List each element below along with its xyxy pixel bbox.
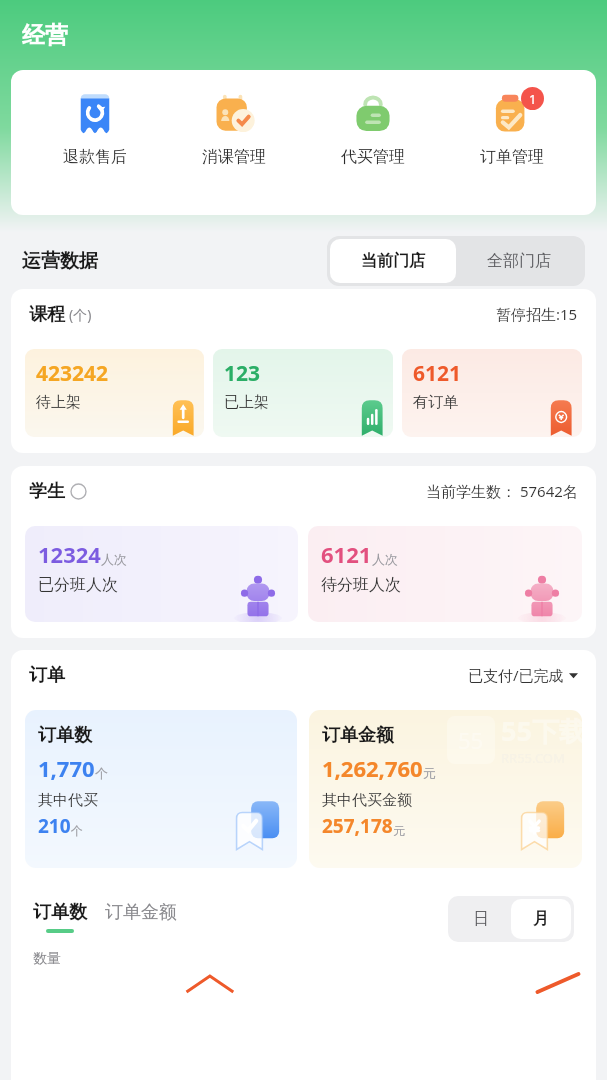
button[interactable]: 123 <box>213 349 393 437</box>
staticText: 订单金额 <box>105 901 177 924</box>
staticText: 消课管理 <box>202 147 266 167</box>
other: 代买管理 <box>350 92 396 138</box>
staticText: 全部门店 <box>487 251 551 271</box>
staticText: 经营 <box>22 21 68 50</box>
button[interactable]: 订单金额 <box>105 901 177 933</box>
staticText: 个 <box>95 765 108 781</box>
button[interactable]: 日 <box>451 899 511 939</box>
button[interactable]: 订单数 <box>25 710 297 868</box>
staticText: 1 <box>529 90 537 108</box>
staticText: 运营数据 <box>22 249 98 273</box>
staticText: 当前学生数： 57642名 <box>426 481 578 501</box>
button[interactable]: 月 <box>511 899 571 939</box>
staticText: 代买管理 <box>341 147 405 167</box>
other: 订单管理 <box>489 92 535 138</box>
staticText: 学生 <box>29 480 65 503</box>
staticText: 257,178 <box>322 813 393 839</box>
staticText: 月 <box>533 909 549 929</box>
button[interactable]: 退款售后 <box>40 92 150 167</box>
staticText: 423242 <box>36 359 109 388</box>
button[interactable]: 订单管理 <box>457 92 567 167</box>
staticText: 个 <box>71 823 83 838</box>
button[interactable]: 全部门店 <box>456 239 582 283</box>
staticText: 其中代买金额 <box>322 791 412 810</box>
staticText: 订单管理 <box>480 147 544 167</box>
staticText: 当前门店 <box>361 251 425 271</box>
staticText: 待上架 <box>36 393 81 412</box>
staticText: 人次 <box>372 551 398 567</box>
staticText: 退款售后 <box>63 147 127 167</box>
staticText: 日 <box>473 909 489 929</box>
button[interactable]: 已支付/已完成 <box>468 665 578 685</box>
other: 退款售后 <box>72 92 118 138</box>
button[interactable]: 订单数 <box>33 901 87 933</box>
button[interactable]: 订单金额 <box>309 710 582 868</box>
staticText: 其中代买 <box>38 791 98 810</box>
button[interactable]: 12324 <box>25 526 298 622</box>
button[interactable]: 消课管理 <box>179 92 289 167</box>
button[interactable]: 423242 <box>25 349 204 437</box>
staticText: 元 <box>423 765 436 781</box>
staticText: 人次 <box>101 551 127 567</box>
staticText: 订单数 <box>33 901 87 924</box>
staticText: 数量 <box>33 950 61 968</box>
staticText: 123 <box>224 359 261 388</box>
staticText: 订单 <box>29 664 65 687</box>
staticText: 订单金额 <box>322 724 394 747</box>
staticText: 订单数 <box>38 724 92 747</box>
staticText: 12324 <box>38 539 101 569</box>
button[interactable]: 代买管理 <box>318 92 428 167</box>
other: 消课管理 <box>211 92 257 138</box>
staticText: 有订单 <box>413 393 458 412</box>
staticText: 1,770 <box>38 753 95 783</box>
staticText: 210 <box>38 813 71 839</box>
staticText: 55下载 <box>501 712 586 749</box>
staticText: 1,262,760 <box>322 753 423 783</box>
button[interactable]: 6121 <box>402 349 582 437</box>
staticText: 6121 <box>321 539 372 569</box>
staticText: 暂停招生:15 <box>496 304 578 324</box>
button[interactable]: 当前门店 <box>330 239 456 283</box>
staticText: 课程 <box>29 303 65 326</box>
staticText: 已分班人次 <box>38 575 118 595</box>
staticText: 待分班人次 <box>321 575 401 595</box>
staticText: 已支付/已完成 <box>468 665 564 685</box>
staticText: 元 <box>393 823 405 838</box>
staticText: 已上架 <box>224 393 269 412</box>
button[interactable]: 6121 <box>308 526 582 622</box>
staticText: (个) <box>69 305 92 324</box>
staticText: 6121 <box>413 359 462 388</box>
